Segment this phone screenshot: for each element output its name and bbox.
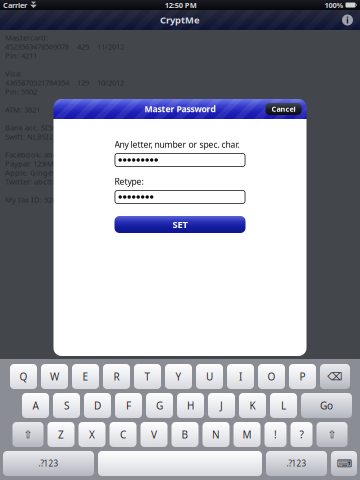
staticText: Z <box>58 428 64 441</box>
button[interactable]: N <box>202 422 229 447</box>
staticText: 100% <box>324 0 343 10</box>
staticText: 12:50 PM <box>165 0 197 10</box>
staticText: Twitter: abc!tw2012 <box>5 176 74 187</box>
staticText: O <box>267 370 275 383</box>
staticText: H <box>187 399 194 412</box>
staticText: Go <box>320 399 333 412</box>
button[interactable]: E <box>72 364 99 389</box>
staticText: Y <box>175 370 181 383</box>
button[interactable]: ⌫ <box>320 364 350 389</box>
button[interactable]: R <box>103 364 130 389</box>
staticText: SET <box>172 218 187 231</box>
staticText: CryptMe <box>160 14 200 26</box>
staticText: Bank acc: SI56 1920 3847 2910 293 <box>5 122 124 133</box>
staticText: U <box>206 370 213 383</box>
staticText: C <box>120 428 126 441</box>
staticText: Q <box>19 370 27 383</box>
button[interactable]: Q <box>10 364 37 389</box>
staticText: Paypal: 123!Msdg <box>5 158 68 169</box>
staticText: ATM: 3821 <box>5 104 40 115</box>
button[interactable]: W <box>41 364 68 389</box>
button[interactable]: ⇧ <box>12 422 43 447</box>
staticText: Carrier <box>3 0 27 10</box>
staticText: ⇧ <box>327 428 336 441</box>
staticText: 4365870921784354 129 10/2012 <box>5 77 124 88</box>
staticText: .?123 <box>38 458 58 469</box>
staticText: S <box>64 399 69 412</box>
button[interactable]: U <box>196 364 223 389</box>
staticText: F <box>126 399 131 412</box>
staticText: E <box>82 370 88 383</box>
button[interactable]: ⌨ <box>331 451 357 476</box>
staticText: Mastercard: <box>5 32 48 43</box>
staticText: Swift: NLBSI2X <box>5 131 57 142</box>
staticText: ⌨ <box>336 457 351 470</box>
button[interactable] <box>98 451 262 476</box>
staticText: Visa: <box>5 68 22 79</box>
staticText: X <box>89 428 95 441</box>
button[interactable]: SET <box>114 216 245 233</box>
staticText: .?123 <box>286 458 306 469</box>
staticText: Cancel <box>271 104 295 114</box>
staticText: ⇧ <box>23 428 32 441</box>
staticText: i <box>346 14 349 26</box>
staticText: J <box>220 399 223 412</box>
staticText: M <box>242 428 251 441</box>
button[interactable]: .?123 <box>3 451 94 476</box>
button[interactable]: ⇧ <box>316 422 347 447</box>
button[interactable]: V <box>140 422 167 447</box>
button[interactable]: H <box>177 393 204 418</box>
button[interactable]: D <box>84 393 111 418</box>
button[interactable]: Go <box>301 393 352 418</box>
staticText: A <box>32 399 38 412</box>
staticText: B <box>181 428 188 441</box>
button[interactable]: L <box>270 393 297 418</box>
button[interactable]: M <box>233 422 260 447</box>
button[interactable]: X <box>78 422 105 447</box>
staticText: Facebook: abc!fb2012 <box>5 149 83 160</box>
button[interactable]: A <box>22 393 49 418</box>
staticText: Pin: 4211 <box>5 50 37 61</box>
staticText: D <box>94 399 101 412</box>
staticText <box>178 457 181 470</box>
button[interactable]: .?123 <box>266 451 327 476</box>
button[interactable]: K <box>239 393 266 418</box>
button[interactable]: T <box>134 364 161 389</box>
button[interactable]: ? <box>290 422 312 447</box>
button[interactable]: F <box>115 393 142 418</box>
button[interactable]: P <box>289 364 316 389</box>
staticText: ⌫ <box>327 370 342 383</box>
staticText: W <box>50 370 59 383</box>
button[interactable]: Z <box>47 422 74 447</box>
button[interactable]: B <box>171 422 198 447</box>
staticText: Retype: <box>114 176 143 187</box>
button[interactable]: J <box>208 393 235 418</box>
button[interactable]: S <box>53 393 80 418</box>
staticText: ? <box>299 428 303 441</box>
staticText: My tax ID: 92837465 <box>5 194 76 205</box>
staticText: Apple: Ginger1976 <box>5 167 71 178</box>
staticText: Pin: 5502 <box>5 86 37 97</box>
button[interactable]: Y <box>165 364 192 389</box>
staticText: Any letter, number or spec. char. <box>114 139 239 150</box>
button[interactable]: G <box>146 393 173 418</box>
staticText: I <box>239 370 242 383</box>
staticText: R <box>113 370 119 383</box>
staticText: 4523563478569078 429 11/2012 <box>5 41 124 52</box>
button[interactable]: O <box>258 364 285 389</box>
staticText: T <box>144 370 150 383</box>
staticText: Master Password <box>144 103 215 115</box>
button[interactable]: I <box>227 364 254 389</box>
staticText: ! <box>274 428 277 441</box>
button[interactable]: Cancel <box>265 103 301 115</box>
button[interactable]: ! <box>264 422 286 447</box>
button[interactable]: C <box>109 422 136 447</box>
staticText: V <box>151 428 157 441</box>
staticText: K <box>249 399 255 412</box>
button[interactable]: Info <box>340 12 355 27</box>
staticText: L <box>281 399 286 412</box>
